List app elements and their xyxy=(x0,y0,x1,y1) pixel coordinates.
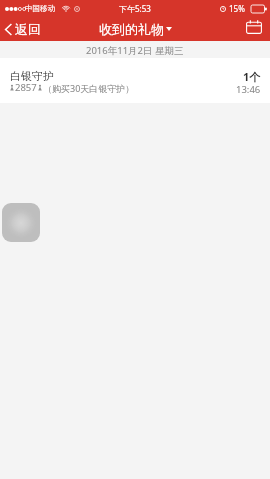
button[interactable]: 返回 xyxy=(0,17,49,41)
staticText: 2016年11月2日 星期三 xyxy=(86,44,184,57)
staticText: 返回 xyxy=(15,21,41,37)
staticText: 2857 xyxy=(15,81,37,94)
button[interactable]: Calendar xyxy=(246,17,270,41)
staticText: 13:46 xyxy=(236,83,261,96)
staticText: 1个 xyxy=(243,69,261,84)
staticText: （购买30天白银守护） xyxy=(43,82,135,94)
staticText: 白银守护 xyxy=(10,69,54,83)
staticText: 中国移动 xyxy=(25,4,55,13)
button[interactable]: 收到的礼物 xyxy=(93,17,178,41)
staticText: 收到的礼物 xyxy=(99,21,164,37)
staticText: 15% xyxy=(229,3,245,14)
button[interactable]: 白银守护 xyxy=(0,58,270,103)
staticText: 下午5:53 xyxy=(119,3,151,14)
